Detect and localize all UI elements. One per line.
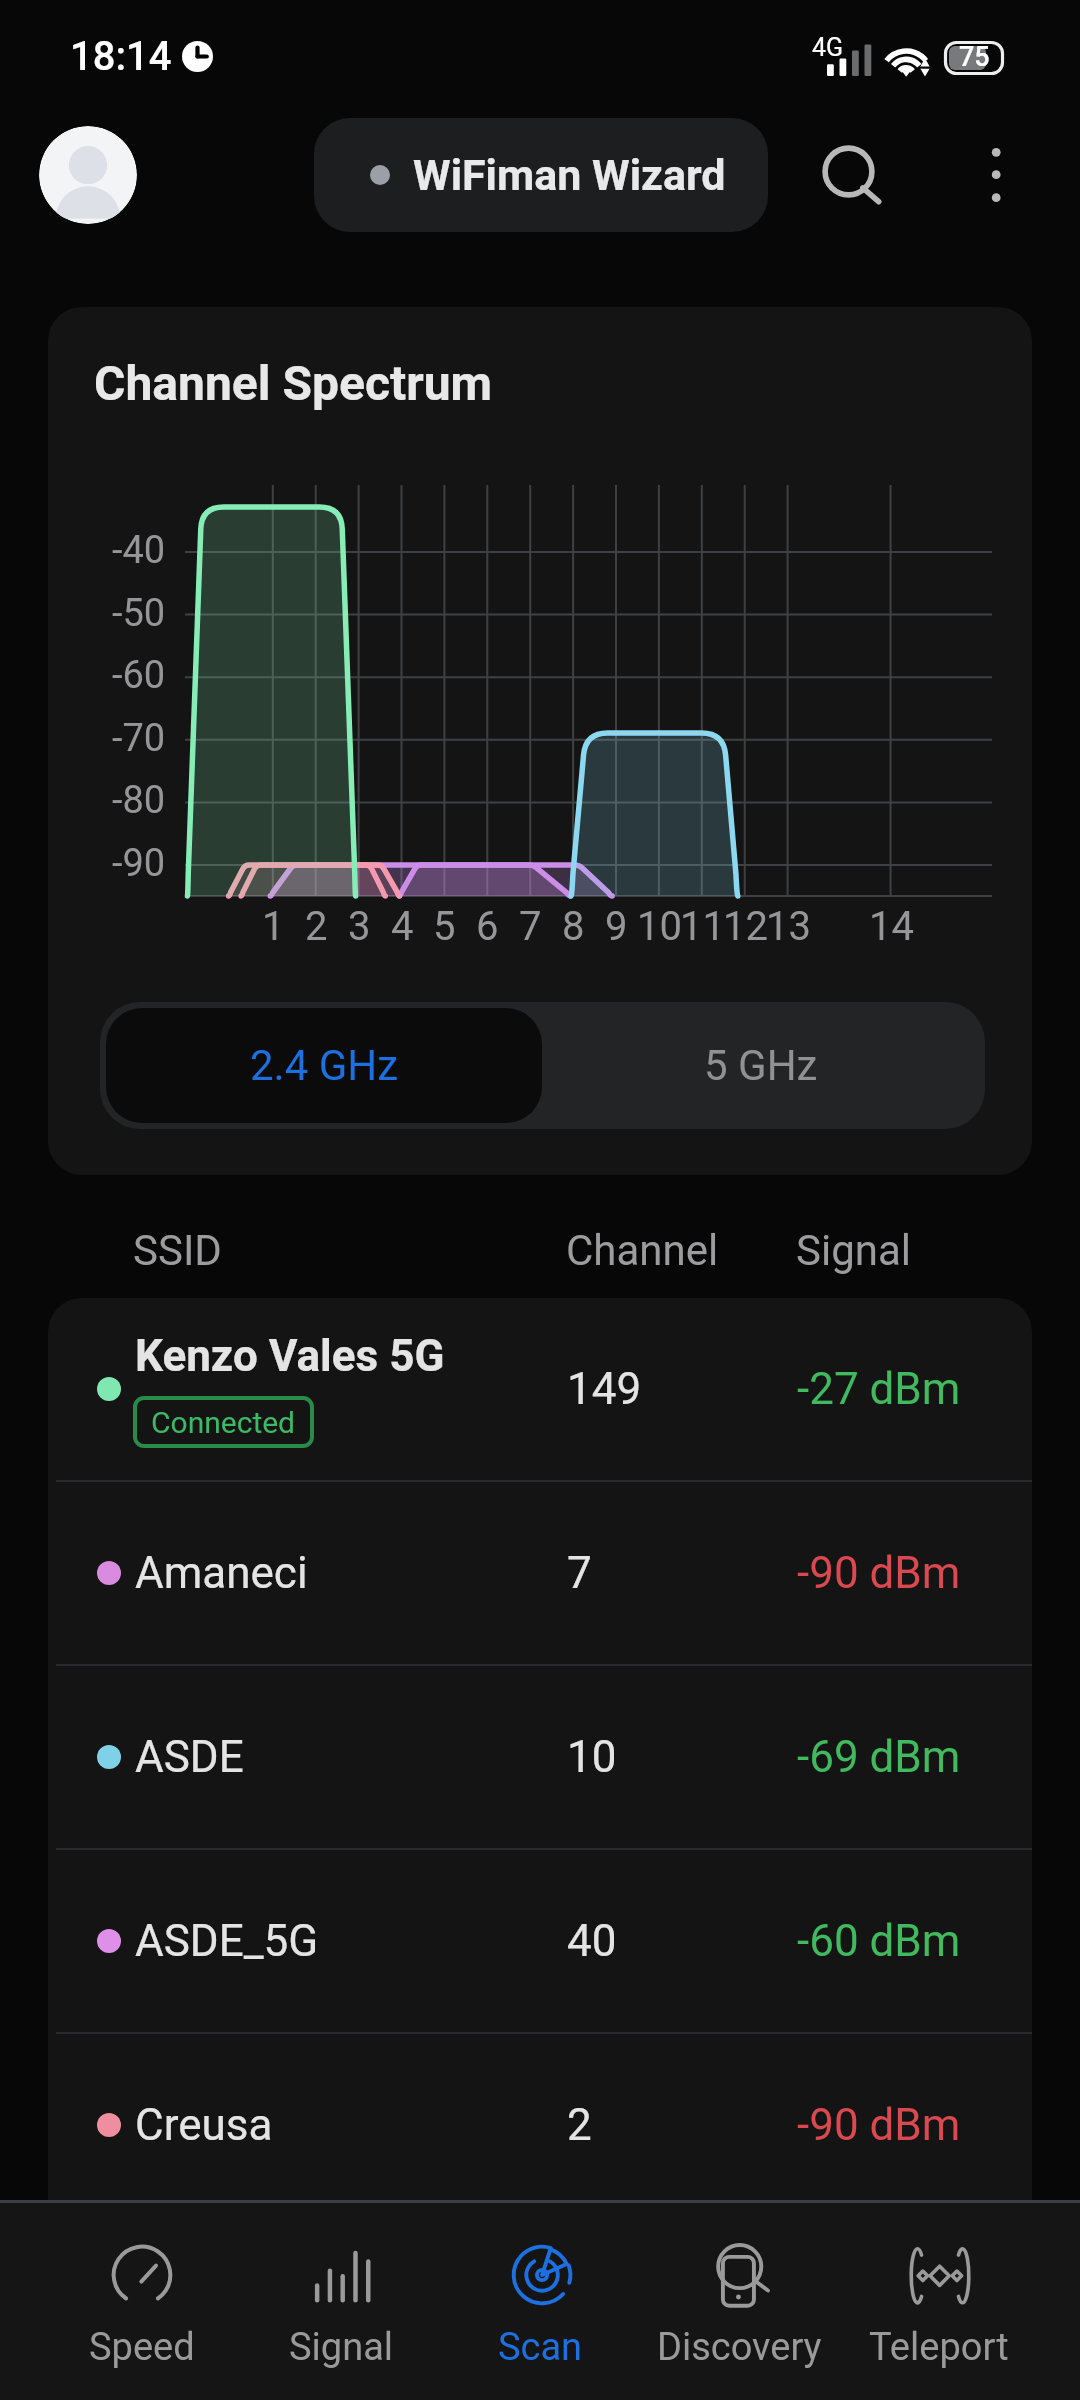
button[interactable]: WiFiman Wizard <box>314 118 768 232</box>
button[interactable]: Search <box>803 126 895 218</box>
staticText: ASDE_5G <box>135 1915 319 1967</box>
staticText: 8 <box>562 903 585 950</box>
staticText: Speed <box>89 2325 195 2370</box>
staticText: WiFiman Wizard <box>413 150 726 200</box>
button[interactable]: Teleport <box>839 2203 1038 2400</box>
staticText: 2 <box>567 2099 592 2151</box>
button[interactable]: Profile <box>39 126 137 224</box>
button[interactable]: Signal <box>242 2203 441 2400</box>
staticText: -90 <box>112 841 166 886</box>
staticText: 4 <box>391 903 414 950</box>
staticText: 14 <box>869 903 914 950</box>
staticText: Scan <box>498 2325 583 2370</box>
staticText: 7 <box>567 1547 592 1599</box>
staticText: 4G <box>812 33 844 62</box>
button[interactable]: Discovery <box>640 2203 839 2400</box>
staticText: -90 dBm <box>797 1547 961 1599</box>
staticText: Channel Spectrum <box>94 355 493 411</box>
staticText: -80 <box>112 778 166 823</box>
staticText: 10 <box>637 903 682 950</box>
button[interactable]: Speed <box>42 2203 242 2400</box>
staticText: 2.4 GHz <box>250 1041 399 1090</box>
staticText: -70 <box>112 716 166 761</box>
staticText: Teleport <box>869 2325 1009 2370</box>
staticText: Amaneci <box>135 1547 308 1599</box>
staticText: 2 <box>305 903 328 950</box>
staticText: 18:14 <box>70 33 172 80</box>
staticText: 5 GHz <box>704 1041 818 1090</box>
button[interactable]: Creusa <box>48 2034 1032 2216</box>
staticText: Kenzo Vales 5G <box>135 1330 445 1382</box>
staticText: -90 dBm <box>797 2099 961 2151</box>
staticText: 3 <box>348 903 371 950</box>
staticText: 7 <box>519 903 542 950</box>
staticText: 6 <box>476 903 499 950</box>
staticText: 149 <box>567 1363 642 1415</box>
staticText: Channel <box>566 1226 719 1275</box>
button[interactable]: ASDE <box>48 1666 1032 1848</box>
staticText: -40 <box>112 528 166 573</box>
button[interactable]: 2.4 GHz <box>106 1008 542 1123</box>
button[interactable]: ASDE_5G <box>48 1850 1032 2032</box>
staticText: 5 <box>433 903 456 950</box>
staticText: 1 <box>262 903 285 950</box>
staticText: -60 dBm <box>797 1915 961 1967</box>
button[interactable]: Scan <box>441 2203 640 2400</box>
staticText: -27 dBm <box>797 1363 961 1415</box>
staticText: 75 <box>959 41 990 73</box>
staticText: -50 <box>112 591 166 636</box>
staticText: 13 <box>766 903 811 950</box>
staticText: 9 <box>605 903 628 950</box>
staticText: ASDE <box>135 1731 244 1783</box>
staticText: -60 <box>112 653 166 698</box>
button[interactable]: 5 GHz <box>542 1008 979 1123</box>
button[interactable]: Kenzo Vales 5G <box>48 1298 1032 1480</box>
staticText: Creusa <box>135 2099 273 2151</box>
staticText: Discovery <box>657 2325 822 2370</box>
staticText: SSID <box>133 1226 222 1275</box>
staticText: Signal <box>289 2325 394 2370</box>
staticText: Signal <box>796 1226 911 1275</box>
staticText: -69 dBm <box>797 1731 961 1783</box>
button[interactable]: Amaneci <box>48 1482 1032 1664</box>
staticText: 10 <box>567 1731 617 1783</box>
staticText: 40 <box>567 1915 617 1967</box>
staticText: 11 <box>680 903 725 950</box>
staticText: 12 <box>723 903 768 950</box>
button[interactable]: More options <box>950 130 1042 222</box>
staticText: Connected <box>151 1405 296 1440</box>
